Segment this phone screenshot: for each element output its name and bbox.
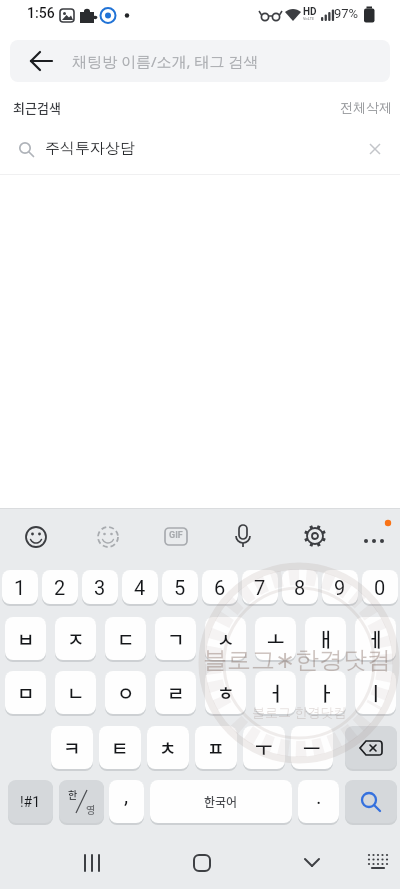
button[interactable]: 한국어 [150,780,292,824]
button[interactable]: ㅍ [195,726,237,770]
button[interactable]: ㅈ [55,617,96,661]
staticText: 2 [54,576,66,599]
button[interactable]: ㅔ [355,617,396,661]
button[interactable] [357,519,391,553]
button[interactable]: 6 [202,570,238,605]
button[interactable]: ㅇ [105,671,146,715]
button[interactable] [91,519,125,553]
button[interactable]: 주식투자상담 [0,131,400,169]
button[interactable]: ㄷ [105,617,146,661]
staticText: ㅣ [367,679,385,707]
button[interactable]: ㅋ [51,726,93,770]
button[interactable]: 한 [59,780,104,824]
staticText: !#1 [20,794,41,810]
staticText: 0 [374,576,386,599]
staticText: ㅇ [117,679,135,707]
button[interactable] [19,519,53,553]
button[interactable]: 1 [2,570,38,605]
button[interactable]: 0 [362,570,398,605]
button[interactable]: ㅏ [305,671,346,715]
staticText: ㄱ [167,625,185,653]
staticText: 블로그∗한경닷컴 [203,645,392,675]
staticText: 3 [94,576,106,599]
button[interactable]: ㅡ [291,726,333,770]
staticText: ㅊ [159,734,177,762]
button[interactable]: ㅣ [355,671,396,715]
staticText: ㅁ [17,679,35,707]
staticText: GIF [169,530,183,541]
staticText: 채팅방 이름/소개, 태그 검색 [72,51,259,71]
staticText: ㄷ [117,625,135,653]
button[interactable] [345,780,397,824]
button[interactable]: 전체삭제 [332,92,396,120]
staticText: 1:56 [27,5,55,21]
button[interactable]: ㅁ [5,671,46,715]
staticText: ㅈ [67,625,85,653]
button[interactable]: ㅅ [205,617,246,661]
staticText: 5 [174,576,186,599]
staticText: 최근검색 [13,98,61,117]
staticText: 7 [254,576,266,599]
button[interactable] [10,40,390,82]
staticText: 97% [334,6,359,21]
button[interactable]: ㅌ [99,726,141,770]
button[interactable]: , [109,780,144,824]
button[interactable]: ㅐ [305,617,346,661]
staticText: . [316,785,322,810]
staticText: ㄹ [167,679,185,707]
staticText: ㄴ [67,679,85,707]
staticText: ㅎ [217,679,235,707]
staticText: 한국어 [204,793,238,810]
button[interactable]: 7 [242,570,278,605]
staticText: 주식투자상담 [45,139,135,158]
button[interactable] [226,519,260,553]
button[interactable]: 5 [162,570,198,605]
button[interactable]: 4 [122,570,158,605]
button[interactable]: 3 [82,570,118,605]
button[interactable]: 8 [282,570,318,605]
staticText: ㅜ [255,734,273,762]
staticText: 9 [334,576,346,599]
staticText: ㅂ [17,625,35,653]
button[interactable]: ㅂ [5,617,46,661]
button[interactable]: 2 [42,570,78,605]
staticText: 6 [214,576,226,599]
staticText: ㅋ [63,734,81,762]
staticText: ㅗ [267,625,285,653]
staticText: 4 [134,576,146,599]
button[interactable]: ㄴ [55,671,96,715]
staticText: ㅌ [111,734,129,762]
staticText: 영 [86,802,96,816]
staticText: ㅏ [317,679,335,707]
staticText: ㅔ [367,625,385,653]
staticText: ㅓ [267,679,285,707]
staticText: VoLTE [303,16,315,21]
staticText: 1 [14,576,26,599]
button[interactable]: ㅜ [243,726,285,770]
staticText: ㅐ [317,625,335,653]
staticText: 한 [68,787,78,801]
button[interactable] [298,519,332,553]
staticText: ㅍ [207,734,225,762]
button[interactable]: ㅊ [147,726,189,770]
staticText: HD [303,6,317,18]
button[interactable]: !#1 [8,780,53,824]
staticText: ㅅ [217,625,235,653]
button[interactable]: ㄱ [155,617,196,661]
button[interactable] [159,519,193,553]
button[interactable]: ㅗ [255,617,296,661]
button[interactable]: ㅓ [255,671,296,715]
button[interactable]: . [298,780,339,824]
staticText: 전체삭제 [340,99,392,115]
staticText: 블로그 한경닷컴 [252,703,347,721]
button[interactable]: ㅎ [205,671,246,715]
staticText: ㅡ [303,734,321,762]
button[interactable]: ㄹ [155,671,196,715]
staticText: , [124,784,129,809]
staticText: 8 [294,576,306,599]
button[interactable]: 9 [322,570,358,605]
button[interactable] [345,726,397,770]
button[interactable] [0,836,400,889]
